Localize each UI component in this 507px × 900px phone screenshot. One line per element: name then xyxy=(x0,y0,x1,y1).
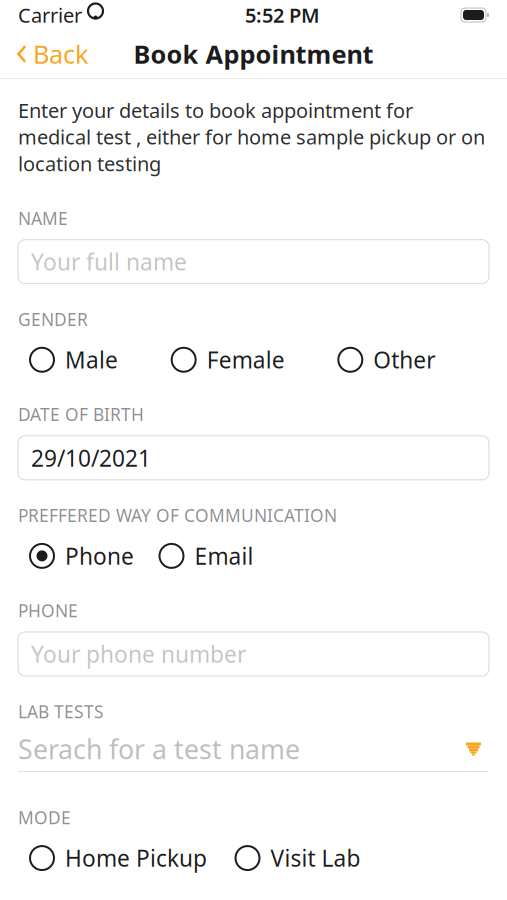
button[interactable]: Male xyxy=(30,341,118,379)
staticText: Enter your details to book appointment f… xyxy=(18,97,485,177)
button[interactable]: 29/10/2021 xyxy=(18,436,489,480)
staticText: Your full name xyxy=(31,247,187,277)
button[interactable]: Visit Lab xyxy=(235,839,360,877)
staticText: Back xyxy=(33,37,89,71)
staticText: DATE OF BIRTH xyxy=(18,403,144,426)
staticText: Visit Lab xyxy=(270,843,360,873)
button[interactable]: Serach for a test name xyxy=(18,727,489,772)
staticText: Home Pickup xyxy=(65,843,207,873)
button[interactable]: Phone xyxy=(30,537,134,575)
staticText: PHONE xyxy=(18,599,78,622)
button[interactable]: Back xyxy=(14,31,91,77)
staticText: PREFFERED WAY OF COMMUNICATION xyxy=(18,504,337,527)
staticText: Phone xyxy=(65,541,134,571)
button[interactable]: Email xyxy=(159,537,253,575)
staticText: Your phone number xyxy=(31,639,246,669)
staticText: GENDER xyxy=(18,308,88,331)
staticText: MODE xyxy=(18,806,71,829)
staticText: Female xyxy=(207,345,285,375)
button[interactable]: Other xyxy=(338,341,435,379)
staticText: 5:52 PM xyxy=(245,2,320,28)
staticText: Male xyxy=(65,345,118,375)
staticText: Other xyxy=(373,345,435,375)
staticText: 29/10/2021 xyxy=(31,443,151,473)
staticText: NAME xyxy=(18,207,68,230)
staticText: Email xyxy=(194,541,253,571)
staticText: Carrier xyxy=(18,2,82,28)
button[interactable]: Your full name xyxy=(18,240,489,284)
button[interactable]: Your phone number xyxy=(18,632,489,676)
button[interactable]: Home Pickup xyxy=(30,839,207,877)
staticText: Serach for a test name xyxy=(18,731,300,767)
staticText: Book Appointment xyxy=(133,37,373,71)
button[interactable]: Female xyxy=(172,341,285,379)
staticText: LAB TESTS xyxy=(18,700,104,723)
